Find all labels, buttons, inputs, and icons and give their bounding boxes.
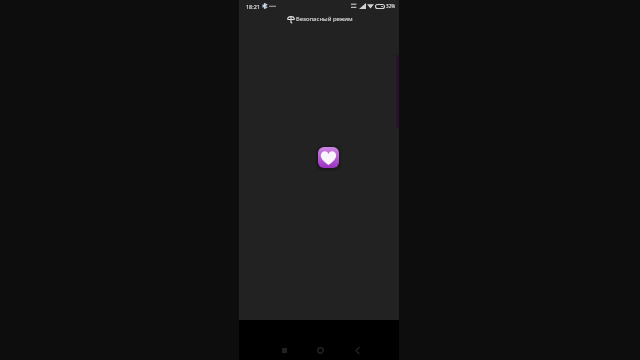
button[interactable]: Health app bbox=[318, 147, 339, 168]
button[interactable]: Back bbox=[345, 338, 369, 360]
staticText: Безопасный режим bbox=[296, 15, 353, 23]
staticText: 32% bbox=[386, 3, 396, 9]
button[interactable]: Recents bbox=[272, 338, 296, 360]
button[interactable]: Home bbox=[308, 338, 332, 360]
staticText: 18:21 bbox=[246, 3, 260, 10]
